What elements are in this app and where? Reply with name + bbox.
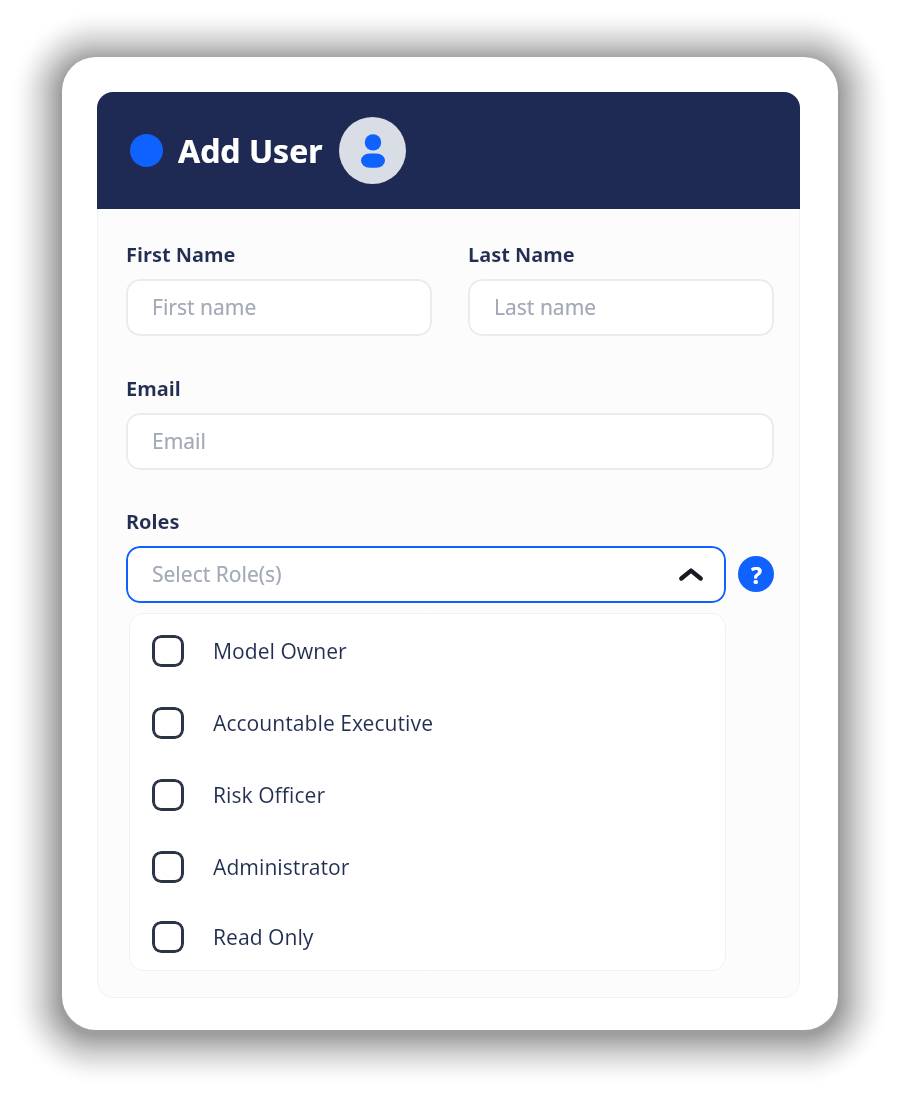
button[interactable]: Model Owner [129, 615, 726, 687]
staticText: First Name [126, 241, 236, 268]
staticText: First name [152, 293, 257, 322]
staticText: Email [126, 375, 181, 402]
button[interactable]: Administrator [129, 831, 726, 903]
staticText: Roles [126, 508, 180, 535]
button[interactable]: Risk Officer [129, 759, 726, 831]
button[interactable]: Help [738, 556, 774, 592]
staticText: Add User [178, 129, 323, 173]
staticText: Email [152, 427, 206, 456]
staticText: Administrator [213, 853, 350, 882]
button[interactable]: Last name [468, 279, 774, 336]
staticText: Risk Officer [213, 781, 326, 810]
staticText: ? [751, 559, 762, 590]
staticText: Model Owner [213, 637, 347, 666]
button[interactable]: User profile [339, 117, 406, 184]
button[interactable]: Email [126, 413, 774, 470]
staticText: Select Role(s) [152, 560, 282, 589]
button[interactable]: Accountable Executive [129, 687, 726, 759]
staticText: Read Only [213, 923, 314, 952]
button[interactable]: Read Only [129, 903, 726, 971]
button[interactable]: Select Role(s) [126, 546, 726, 603]
button[interactable]: First name [126, 279, 432, 336]
staticText: Accountable Executive [213, 709, 434, 738]
staticText: Last Name [468, 241, 575, 268]
staticText: Last name [494, 293, 597, 322]
